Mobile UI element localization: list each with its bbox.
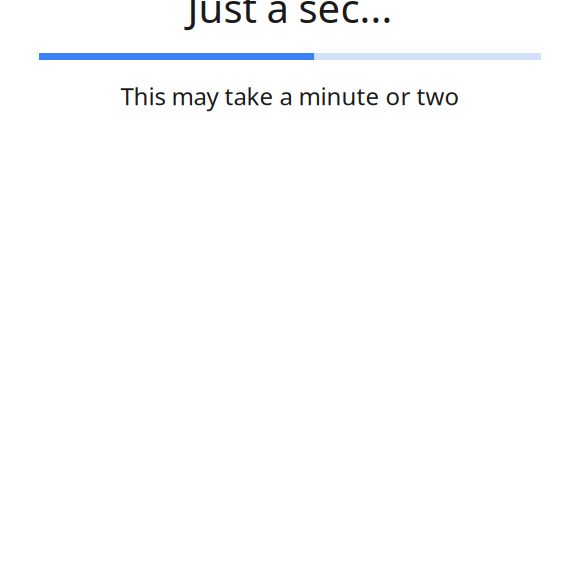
staticText: This may take a minute or two <box>120 80 459 112</box>
staticText: Just a sec... <box>187 0 392 34</box>
